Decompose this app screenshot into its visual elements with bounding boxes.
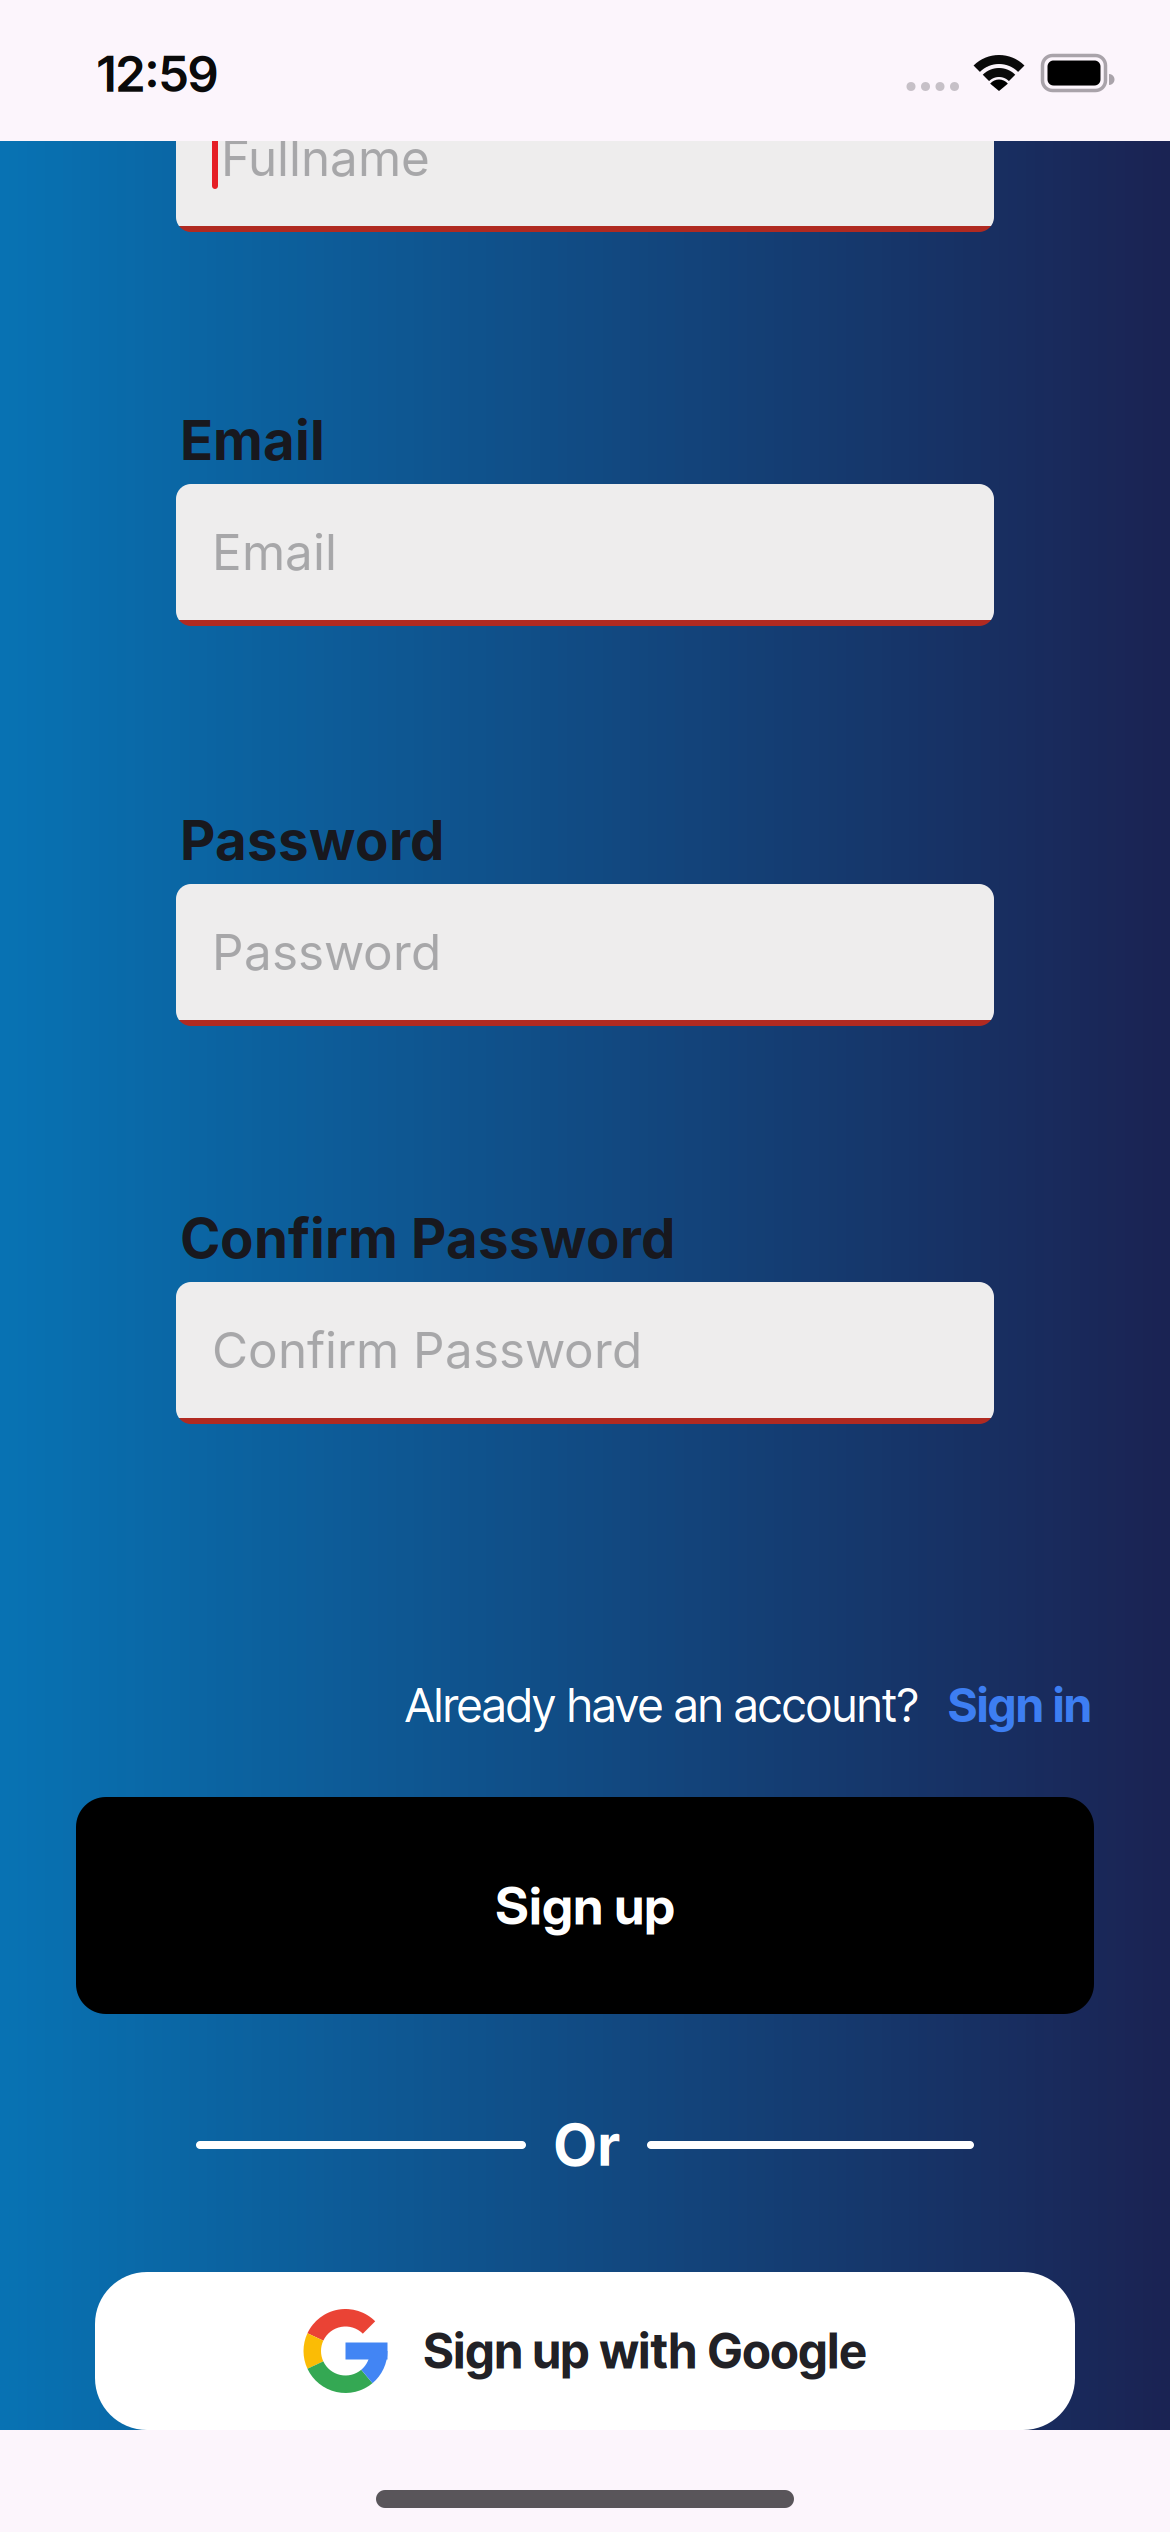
staticText: Confirm Password xyxy=(180,1205,675,1271)
staticText: Email xyxy=(180,407,325,473)
button[interactable]: Sign up xyxy=(76,1797,1094,2014)
staticText: Sign in xyxy=(948,1677,1092,1733)
staticText: Or xyxy=(553,2110,620,2180)
staticText: 12:59 xyxy=(97,44,218,104)
staticText: Sign up with Google xyxy=(423,2322,866,2380)
textField[interactable]: Email xyxy=(212,522,337,582)
staticText: Confirm Password xyxy=(212,1320,642,1380)
textField[interactable]: Confirm Password xyxy=(212,1320,642,1380)
staticText: Email xyxy=(212,522,337,582)
button[interactable]: Sign in xyxy=(948,1677,1092,1733)
textField[interactable]: Fullname xyxy=(221,128,430,188)
button[interactable]: Sign up with Google xyxy=(95,2272,1075,2430)
staticText: Sign up xyxy=(495,1874,675,1937)
staticText: Fullname xyxy=(221,128,430,188)
textField[interactable]: Password xyxy=(212,922,441,982)
staticText: Password xyxy=(212,922,441,982)
staticText: Password xyxy=(180,807,444,873)
staticText: Already have an account? xyxy=(405,1677,918,1733)
